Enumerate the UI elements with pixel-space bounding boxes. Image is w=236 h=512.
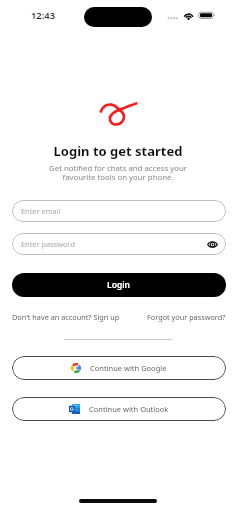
button[interactable]: Don't have an account? Sign up <box>12 312 120 322</box>
button[interactable]: Enter email <box>12 200 226 222</box>
staticText: Login to get started <box>0 142 236 160</box>
staticText: Login <box>107 279 131 291</box>
other: App logo <box>99 101 137 128</box>
button[interactable]: Continue with Google <box>12 356 226 380</box>
button[interactable]: Show password <box>207 240 218 249</box>
button[interactable]: Continue with Outlook <box>12 397 226 421</box>
staticText: Get notified for chats and access your f… <box>0 163 236 183</box>
button[interactable]: Forgot your password? <box>147 312 226 322</box>
staticText: Continue with Outlook <box>89 404 169 414</box>
staticText: 12:43 <box>31 9 56 22</box>
staticText: Continue with Google <box>90 363 167 373</box>
button[interactable]: Login <box>12 273 226 297</box>
staticText: Forgot your password? <box>147 312 226 322</box>
staticText: Enter email <box>21 206 61 216</box>
button[interactable]: Enter password <box>12 233 226 255</box>
staticText: Don't have an account? Sign up <box>12 312 120 322</box>
staticText: Enter password <box>21 239 75 249</box>
